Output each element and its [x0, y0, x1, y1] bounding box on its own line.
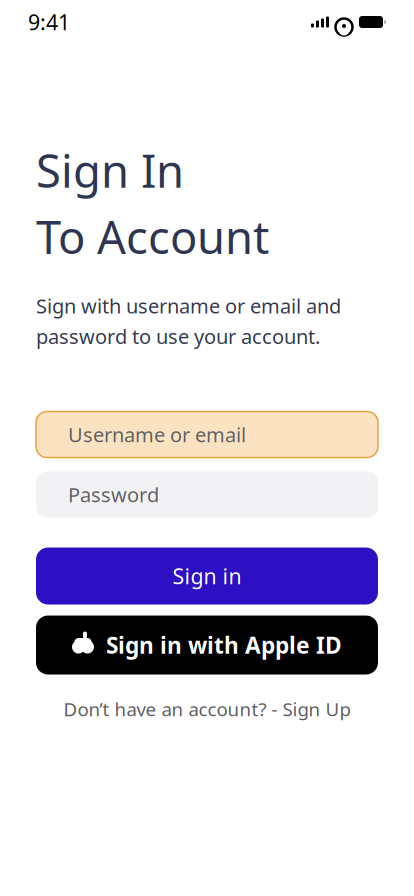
- button[interactable]: Sign in: [36, 547, 378, 604]
- staticText: Sign in with Apple ID: [106, 630, 342, 660]
- staticText: Username or email: [68, 421, 246, 448]
- staticText: To Account: [36, 206, 269, 266]
- button[interactable]: Password: [36, 471, 378, 517]
- staticText: Sign In: [36, 140, 184, 200]
- staticText: 9:41: [28, 8, 70, 36]
- staticText: password to use your account.: [36, 323, 320, 350]
- button[interactable]: Username or email: [36, 411, 378, 457]
- button[interactable]: Don’t have an account? - Sign Up: [36, 696, 378, 721]
- staticText: Don’t have an account? - Sign Up: [63, 696, 350, 721]
- staticText: Sign in: [172, 562, 241, 590]
- button[interactable]: Sign in with Apple ID: [36, 615, 378, 674]
- staticText: Password: [68, 481, 159, 508]
- staticText: Sign with username or email and: [36, 292, 341, 319]
